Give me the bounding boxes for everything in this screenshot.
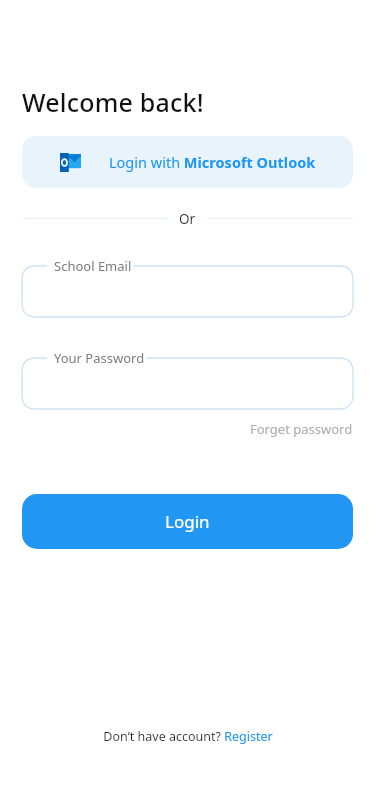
staticText: Login with Microsoft Outlook (109, 152, 316, 172)
staticText: Or (179, 210, 196, 227)
button[interactable]: Forget password (250, 420, 353, 438)
button[interactable] (22, 266, 353, 317)
staticText: Forget password (250, 420, 353, 438)
staticText: Your Password (54, 349, 145, 367)
button[interactable] (22, 358, 353, 409)
staticText: Don’t have account? Register (103, 728, 273, 745)
staticText: Login (165, 510, 210, 533)
button[interactable]: Microsoft Outlook (22, 136, 353, 188)
staticText: Welcome back! (22, 85, 204, 119)
staticText: School Email (54, 257, 132, 275)
button[interactable]: Don’t have account? Register (103, 728, 273, 745)
other: Microsoft Outlook (60, 153, 81, 172)
button[interactable]: Login (22, 494, 353, 549)
